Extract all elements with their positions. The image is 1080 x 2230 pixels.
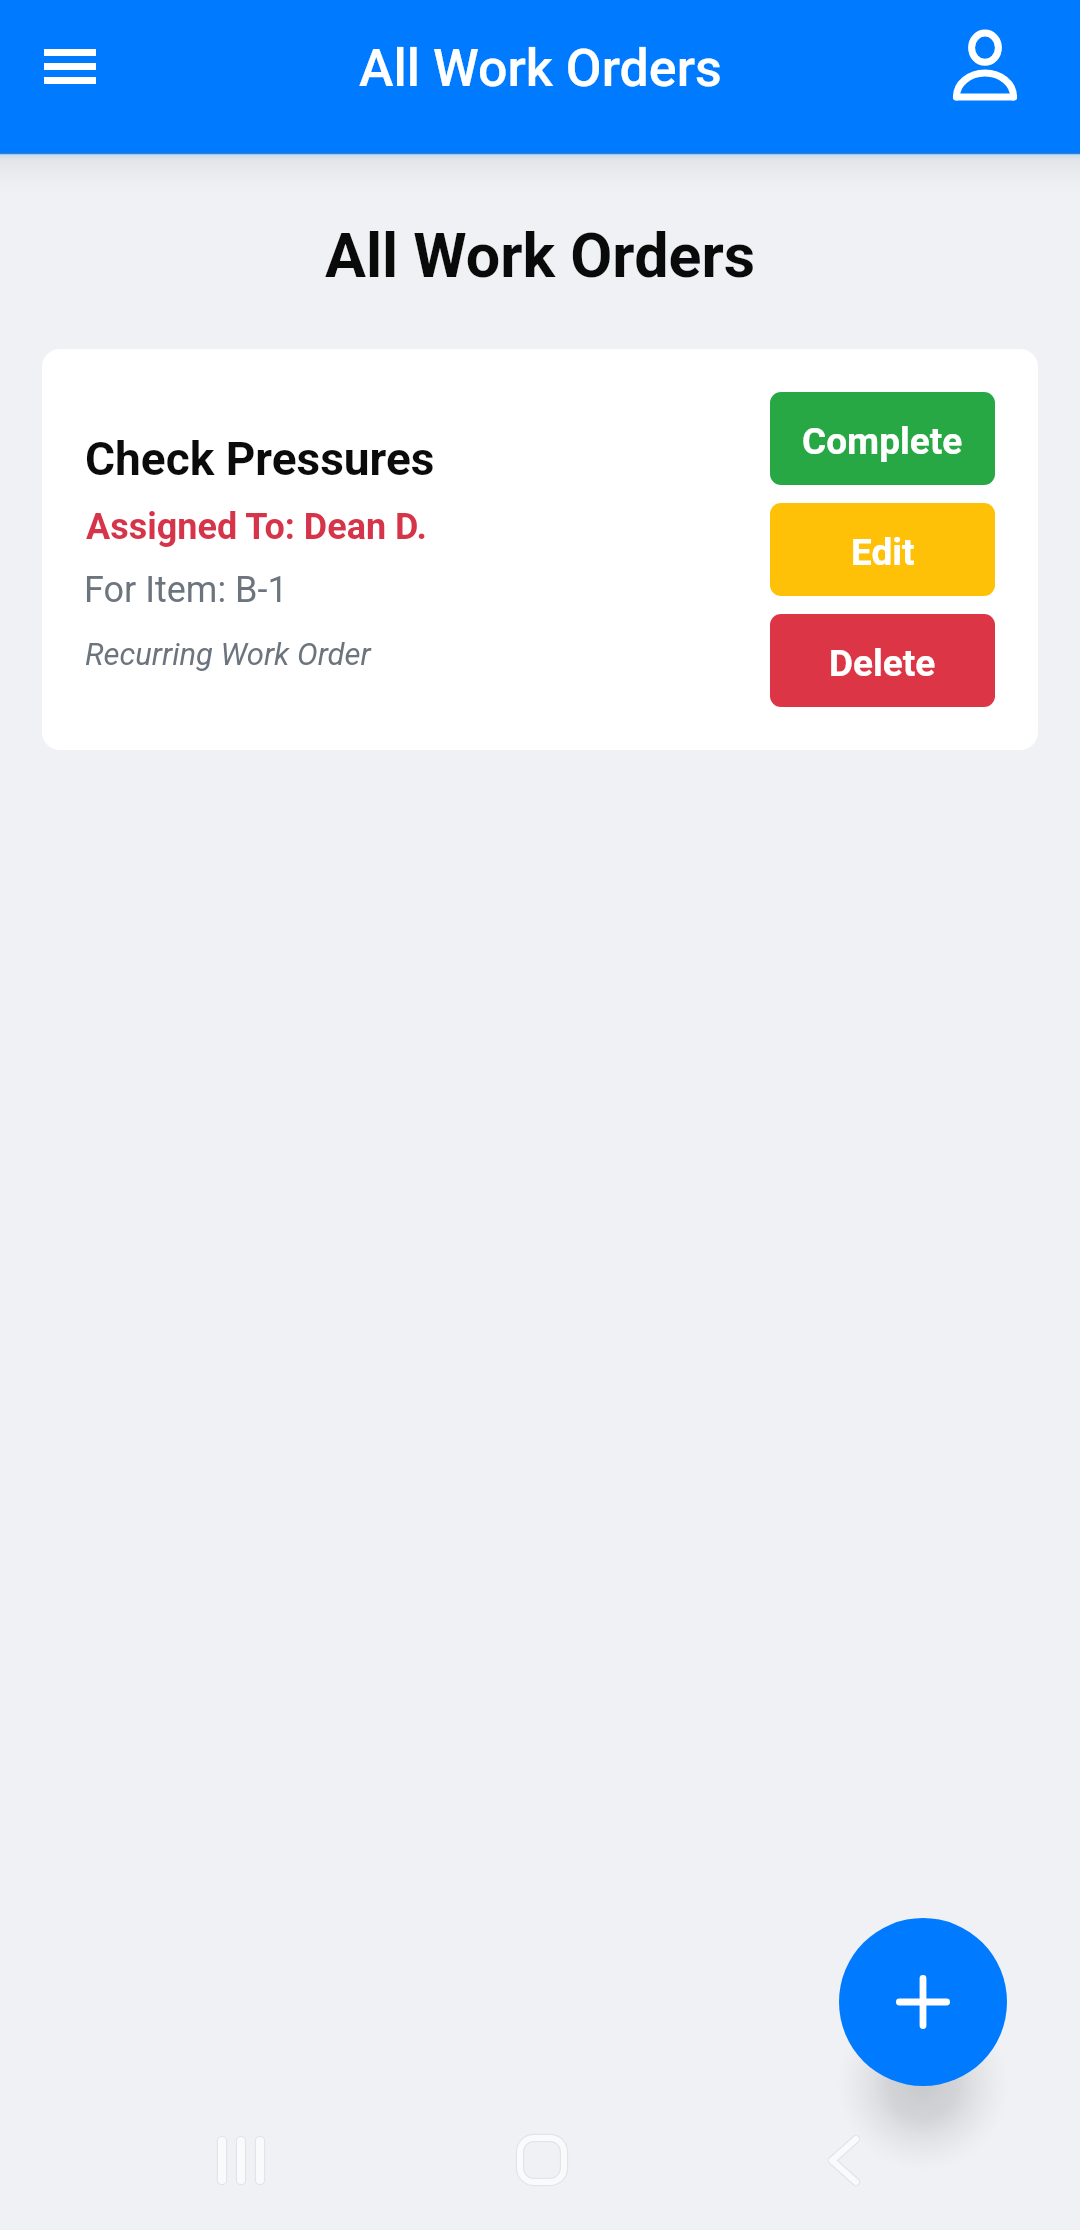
staticText: Recurring Work Order	[85, 636, 371, 672]
button[interactable]: Home	[491, 2109, 593, 2211]
staticText: Complete	[802, 420, 963, 463]
staticText: Assigned To: Dean D.	[86, 506, 427, 548]
staticText: For Item: B-1	[84, 569, 288, 611]
button[interactable]: Recent apps	[190, 2109, 292, 2211]
button[interactable]: Account	[932, 13, 1038, 117]
staticText: Check Pressures	[85, 432, 435, 486]
staticText: All Work Orders	[0, 220, 1080, 291]
button[interactable]: Edit	[770, 503, 995, 596]
button[interactable]: Open navigation menu	[18, 14, 122, 118]
button[interactable]: Check Pressures	[42, 349, 1038, 750]
button[interactable]: Complete	[770, 392, 995, 485]
staticText: All Work Orders	[359, 38, 722, 99]
staticText: Delete	[829, 642, 936, 685]
button[interactable]: Delete	[770, 614, 995, 707]
button[interactable]: Add work order	[839, 1918, 1007, 2086]
button[interactable]: Back	[793, 2109, 895, 2211]
staticText: Edit	[851, 531, 915, 574]
